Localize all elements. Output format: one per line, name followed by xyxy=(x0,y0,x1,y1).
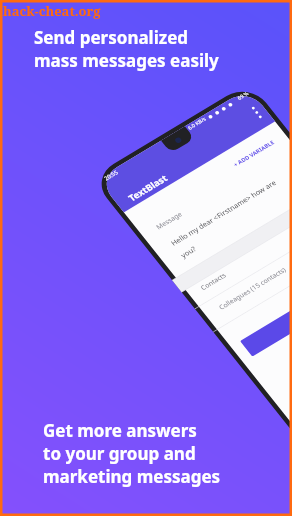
staticText: Get more answers xyxy=(43,419,197,442)
staticText: mass messages easily xyxy=(34,49,219,72)
staticText: marketing messages xyxy=(43,465,221,488)
staticText: Send personalized xyxy=(34,26,189,49)
staticText: hack-cheat.org xyxy=(3,2,101,20)
staticText: to your group and xyxy=(43,442,196,465)
